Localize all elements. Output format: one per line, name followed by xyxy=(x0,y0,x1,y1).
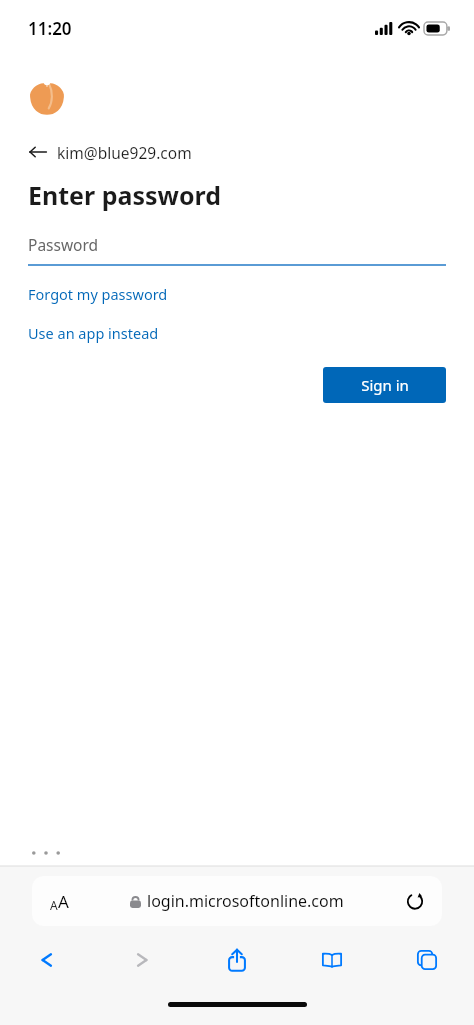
staticText: kim@blue929.com xyxy=(57,142,192,163)
button[interactable]: Bookmarks xyxy=(303,937,361,983)
staticText: A xyxy=(50,897,58,913)
staticText: Password xyxy=(28,234,99,255)
staticText: Use an app instead xyxy=(28,323,159,343)
button[interactable]: Forgot my password xyxy=(28,284,168,304)
button[interactable]: Tabs xyxy=(398,937,456,983)
staticText: login.microsoftonline.com xyxy=(147,890,344,912)
button[interactable]: Text size options xyxy=(32,876,442,926)
staticText: A xyxy=(58,890,69,913)
button[interactable]: Reload page xyxy=(402,888,428,914)
other: Text size options xyxy=(50,890,69,913)
button[interactable]: Password xyxy=(28,234,446,266)
staticText: 11:20 xyxy=(28,17,72,40)
button[interactable]: Back xyxy=(28,138,192,166)
button[interactable]: Forward xyxy=(113,937,171,983)
button[interactable]: Back xyxy=(18,937,76,983)
staticText: Sign in xyxy=(361,375,409,395)
staticText: Enter password xyxy=(28,178,222,212)
button[interactable]: Sign in xyxy=(323,367,446,403)
other: Back xyxy=(28,142,48,162)
button[interactable]: Share xyxy=(208,937,266,983)
button[interactable]: Use an app instead xyxy=(28,323,159,343)
staticText: Forgot my password xyxy=(28,284,168,304)
